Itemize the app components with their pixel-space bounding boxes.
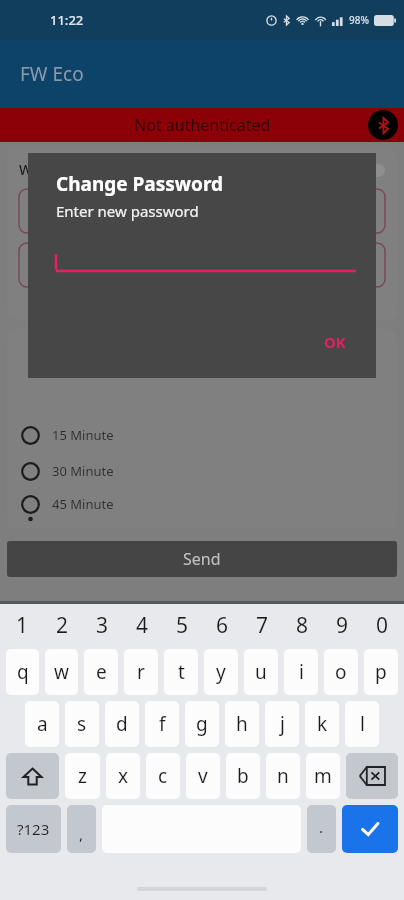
staticText: . <box>319 817 324 837</box>
button[interactable]: d <box>105 701 139 747</box>
button[interactable]: Send <box>7 541 397 577</box>
button[interactable]: g <box>185 701 219 747</box>
button[interactable]: 8 <box>282 604 322 646</box>
staticText: z <box>78 763 87 789</box>
staticText: w <box>54 659 69 685</box>
staticText: k <box>317 711 328 737</box>
button[interactable]: s <box>65 701 99 747</box>
staticText: 4 <box>136 611 149 640</box>
staticText: s <box>77 711 87 737</box>
staticText: f <box>159 711 166 737</box>
staticText: h <box>236 711 248 737</box>
staticText: n <box>277 763 289 789</box>
staticText: Change Password <box>56 171 224 197</box>
staticText: 9 <box>336 611 349 640</box>
button[interactable]: m <box>306 753 340 799</box>
staticText: e <box>96 659 107 685</box>
button[interactable]: 3 <box>82 604 122 646</box>
staticText: y <box>216 659 226 685</box>
staticText: Send <box>183 548 221 570</box>
staticText: , <box>79 824 84 844</box>
staticText: q <box>17 659 29 685</box>
button[interactable]: c <box>146 753 180 799</box>
button[interactable]: 15 Minute <box>21 417 383 453</box>
staticText: 45 Minute <box>52 495 114 513</box>
button[interactable]: u <box>244 649 278 695</box>
button[interactable]: v <box>186 753 220 799</box>
staticText: v <box>198 763 208 789</box>
button[interactable]: i <box>284 649 318 695</box>
staticText: 1 <box>16 611 29 640</box>
button[interactable]: z <box>65 753 100 799</box>
button[interactable]: k <box>305 701 339 747</box>
button[interactable]: b <box>226 753 260 799</box>
staticText: 3 <box>96 611 109 640</box>
staticText: 2 <box>56 611 69 640</box>
button[interactable]: l <box>345 701 379 747</box>
button[interactable]: e <box>84 649 118 695</box>
button[interactable]: y <box>204 649 238 695</box>
staticText: i <box>299 659 304 685</box>
button[interactable]: a <box>25 701 59 747</box>
staticText: 15 Minute <box>52 426 114 444</box>
button[interactable]: 4 <box>122 604 162 646</box>
staticText: g <box>196 711 208 737</box>
staticText: 30 Minute <box>52 462 114 480</box>
staticText: 11:22 <box>50 11 84 29</box>
button[interactable]: x <box>106 753 140 799</box>
staticText: Not authenticated <box>134 114 271 136</box>
staticText: j <box>280 711 285 737</box>
button[interactable]: 45 Minute <box>21 489 383 519</box>
button[interactable]: 6 <box>202 604 242 646</box>
button[interactable]: Shift <box>6 753 59 799</box>
staticText: o <box>335 659 347 685</box>
button[interactable]: j <box>265 701 299 747</box>
button[interactable]: n <box>266 753 300 799</box>
staticText: FW Eco <box>20 61 84 87</box>
staticText: 5 <box>176 611 189 640</box>
button[interactable]: r <box>124 649 158 695</box>
button[interactable]: 2 <box>42 604 82 646</box>
button[interactable]: Backspace <box>346 753 398 799</box>
button[interactable]: Enter <box>342 805 398 853</box>
button[interactable]: Bluetooth <box>368 110 398 140</box>
staticText: p <box>375 659 387 685</box>
staticText: t <box>178 659 185 685</box>
staticText: ?123 <box>17 819 50 839</box>
button[interactable]: 30 Minute <box>21 453 383 489</box>
button[interactable]: WiFi toggle <box>347 162 385 178</box>
staticText: m <box>314 763 332 789</box>
button[interactable]: t <box>164 649 198 695</box>
staticText: Enter new password <box>56 201 199 221</box>
staticText: 7 <box>256 611 269 640</box>
button[interactable]: w <box>45 649 78 695</box>
button[interactable]: h <box>225 701 259 747</box>
button[interactable]: 0 <box>362 604 402 646</box>
staticText: c <box>158 763 168 789</box>
staticText: a <box>37 711 48 737</box>
staticText: 98% <box>349 13 369 27</box>
button[interactable]: q <box>6 649 39 695</box>
staticText: OK <box>324 332 346 352</box>
button[interactable]: 9 <box>322 604 362 646</box>
button[interactable]: 1 <box>2 604 42 646</box>
staticText: 8 <box>296 611 309 640</box>
staticText: d <box>116 711 128 737</box>
button[interactable]: Period <box>307 805 336 853</box>
staticText: u <box>255 659 267 685</box>
staticText: l <box>360 711 365 737</box>
button[interactable]: 5 <box>162 604 202 646</box>
staticText: x <box>118 763 129 789</box>
button[interactable]: o <box>324 649 358 695</box>
staticText: WiFi <box>19 160 48 179</box>
staticText: r <box>137 659 145 685</box>
button[interactable]: OK <box>314 324 356 360</box>
staticText: 0 <box>376 611 389 640</box>
button[interactable]: f <box>145 701 179 747</box>
staticText: b <box>237 763 249 789</box>
button[interactable]: 7 <box>242 604 282 646</box>
button[interactable]: Comma <box>67 805 96 853</box>
button[interactable]: p <box>364 649 398 695</box>
button[interactable]: ?123 <box>6 805 61 853</box>
